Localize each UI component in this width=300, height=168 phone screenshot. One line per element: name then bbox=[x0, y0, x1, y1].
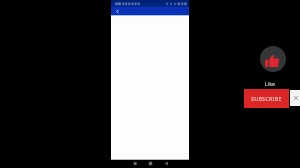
staticText: SUBSCRIBE bbox=[251, 95, 282, 102]
button[interactable]: Like bbox=[260, 46, 286, 72]
button[interactable]: Back bbox=[113, 7, 121, 15]
button[interactable]: SUBSCRIBE bbox=[244, 89, 289, 108]
button[interactable]: Close bbox=[290, 90, 300, 106]
staticText: Like bbox=[257, 80, 283, 87]
